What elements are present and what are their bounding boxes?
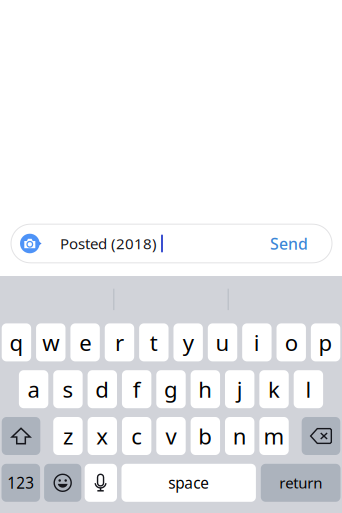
button[interactable]: Shift (2, 417, 40, 455)
button[interactable]: t (139, 323, 168, 361)
button[interactable]: p (311, 323, 340, 361)
button[interactable]: s (53, 370, 83, 408)
staticText: g (164, 374, 178, 404)
button[interactable]: q (2, 323, 31, 361)
staticText: p (319, 327, 333, 357)
staticText: s (62, 374, 73, 404)
staticText: v (165, 421, 176, 451)
staticText: space (168, 472, 209, 493)
staticText: y (183, 327, 194, 357)
button[interactable]: j (225, 370, 254, 408)
staticText: h (198, 374, 212, 404)
staticText: return (279, 473, 322, 493)
staticText: r (115, 327, 124, 357)
staticText: t (150, 327, 158, 357)
button[interactable]: k (259, 370, 289, 408)
staticText: k (268, 374, 280, 404)
button[interactable]: f (122, 370, 151, 408)
button[interactable]: g (156, 370, 186, 408)
button[interactable]: return (261, 464, 340, 502)
staticText: d (95, 374, 109, 404)
button[interactable]: Camera (11, 224, 47, 263)
button[interactable]: c (122, 417, 151, 455)
button[interactable]: m (259, 417, 289, 455)
staticText: w (42, 327, 59, 357)
button[interactable]: space (121, 464, 256, 502)
staticText: u (215, 327, 229, 357)
button[interactable]: i (242, 323, 272, 361)
staticText: o (285, 327, 298, 357)
staticText: l (305, 374, 311, 404)
button[interactable]: Emoji (44, 464, 81, 502)
staticText: f (133, 374, 141, 404)
button[interactable]: n (225, 417, 254, 455)
button[interactable]: e (70, 323, 100, 361)
button[interactable]: r (105, 323, 134, 361)
staticText: x (96, 421, 108, 451)
button[interactable]: o (276, 323, 306, 361)
staticText: e (79, 327, 91, 357)
button[interactable]: a (19, 370, 48, 408)
staticText: b (198, 421, 212, 451)
staticText: c (131, 421, 142, 451)
staticText: q (9, 327, 23, 357)
button[interactable]: 123 (1, 464, 40, 502)
button[interactable]: Delete (302, 417, 340, 455)
button[interactable]: l (294, 370, 323, 408)
staticText: n (233, 421, 247, 451)
staticText: Posted (2018) (60, 233, 157, 254)
button[interactable]: z (53, 417, 83, 455)
button[interactable]: Dictation (85, 464, 117, 502)
button[interactable]: u (208, 323, 237, 361)
button[interactable]: Send (270, 224, 332, 263)
staticText: Send (270, 233, 308, 254)
staticText: j (237, 374, 243, 404)
staticText: z (63, 421, 73, 451)
button[interactable]: d (88, 370, 117, 408)
button[interactable]: h (191, 370, 220, 408)
button[interactable]: w (36, 323, 65, 361)
button[interactable]: b (191, 417, 220, 455)
staticText: a (28, 374, 40, 404)
staticText: 123 (7, 472, 34, 493)
button[interactable]: x (88, 417, 117, 455)
button[interactable]: y (173, 323, 203, 361)
staticText: m (263, 421, 284, 451)
button[interactable]: v (156, 417, 186, 455)
staticText: i (254, 327, 260, 357)
